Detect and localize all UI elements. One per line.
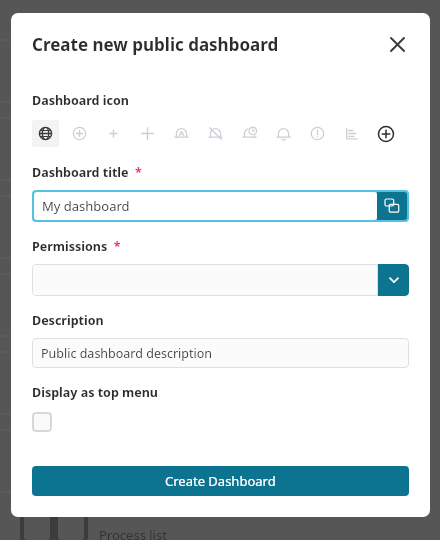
staticText: Dashboard icon xyxy=(32,92,129,109)
button[interactable]: Alert xyxy=(304,120,331,147)
button[interactable]: Close xyxy=(384,31,410,57)
staticText: Create Dashboard xyxy=(165,472,276,490)
button[interactable]: Add icon xyxy=(372,120,399,147)
staticText: Dashboard title * xyxy=(32,164,142,181)
button[interactable] xyxy=(32,264,378,296)
staticText: Display as top menu xyxy=(32,384,158,401)
button[interactable]: Public dashboard description xyxy=(32,338,409,368)
staticText: Permissions * xyxy=(32,238,121,255)
button[interactable]: Translate title xyxy=(377,192,407,220)
button[interactable]: Create Dashboard xyxy=(32,466,409,496)
button[interactable]: Plus small xyxy=(100,120,127,147)
staticText: Process list xyxy=(99,526,167,540)
button[interactable]: Bell xyxy=(270,120,297,147)
staticText: Create new public dashboard xyxy=(32,33,279,56)
button[interactable]: Display as top menu checkbox xyxy=(32,412,52,432)
button[interactable]: Plus large xyxy=(134,120,161,147)
button[interactable]: My dashboard xyxy=(34,192,377,220)
button[interactable]: Add circle xyxy=(66,120,93,147)
button[interactable]: Alarm off xyxy=(202,120,229,147)
staticText: My dashboard xyxy=(42,197,130,215)
button[interactable]: Open permissions dropdown xyxy=(378,264,409,296)
button[interactable]: Bars xyxy=(338,120,365,147)
button[interactable]: Alarm A xyxy=(168,120,195,147)
button[interactable]: Alarm clock xyxy=(236,120,263,147)
button[interactable]: Globe icon xyxy=(32,120,59,147)
staticText: Public dashboard description xyxy=(41,345,213,362)
staticText: Description xyxy=(32,312,104,329)
